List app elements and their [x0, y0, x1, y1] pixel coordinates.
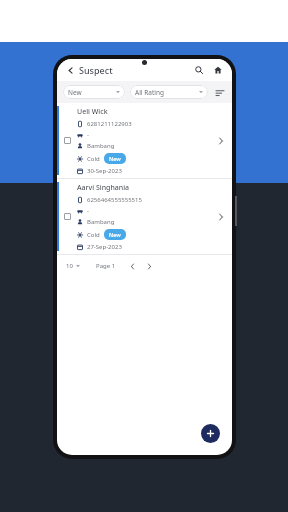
button[interactable]: Ueli Wick	[57, 103, 232, 178]
staticText: New	[109, 231, 121, 238]
staticText: Bambang	[87, 142, 115, 150]
button[interactable]: Home	[211, 63, 225, 77]
button[interactable]: 10	[66, 262, 82, 270]
staticText: 27-Sep-2023	[87, 243, 122, 251]
button[interactable]: Sort	[213, 86, 226, 99]
button[interactable]: Next page	[143, 260, 155, 272]
button[interactable]: Open details	[214, 134, 228, 148]
button[interactable]: Open details	[214, 210, 228, 224]
button[interactable]: New	[63, 85, 125, 99]
button[interactable]	[64, 137, 71, 144]
staticText: Page 1	[96, 262, 116, 270]
staticText: 6256464555555515	[87, 196, 142, 204]
staticText: -	[87, 131, 89, 139]
staticText: 10	[66, 262, 73, 270]
staticText: New	[68, 88, 82, 97]
staticText: Ueli Wick	[77, 107, 108, 117]
staticText: Suspect	[79, 64, 113, 76]
button[interactable]: Search	[192, 63, 206, 77]
button[interactable]: Add	[201, 424, 220, 443]
staticText: -	[87, 207, 89, 215]
button[interactable]: Previous page	[126, 260, 138, 272]
button[interactable]: Aarvi Singhania	[57, 179, 232, 254]
staticText: New	[109, 155, 121, 162]
button[interactable]: All Rating	[130, 85, 208, 99]
staticText: All Rating	[135, 88, 164, 97]
staticText: Bambang	[87, 218, 115, 226]
staticText: Aarvi Singhania	[77, 183, 130, 193]
staticText: 30-Sep-2023	[87, 167, 122, 175]
staticText: Cold	[87, 231, 100, 239]
button[interactable]: Back	[64, 64, 76, 76]
staticText: Cold	[87, 155, 100, 163]
staticText: 628121112290​3	[87, 120, 132, 128]
button[interactable]	[64, 213, 71, 220]
